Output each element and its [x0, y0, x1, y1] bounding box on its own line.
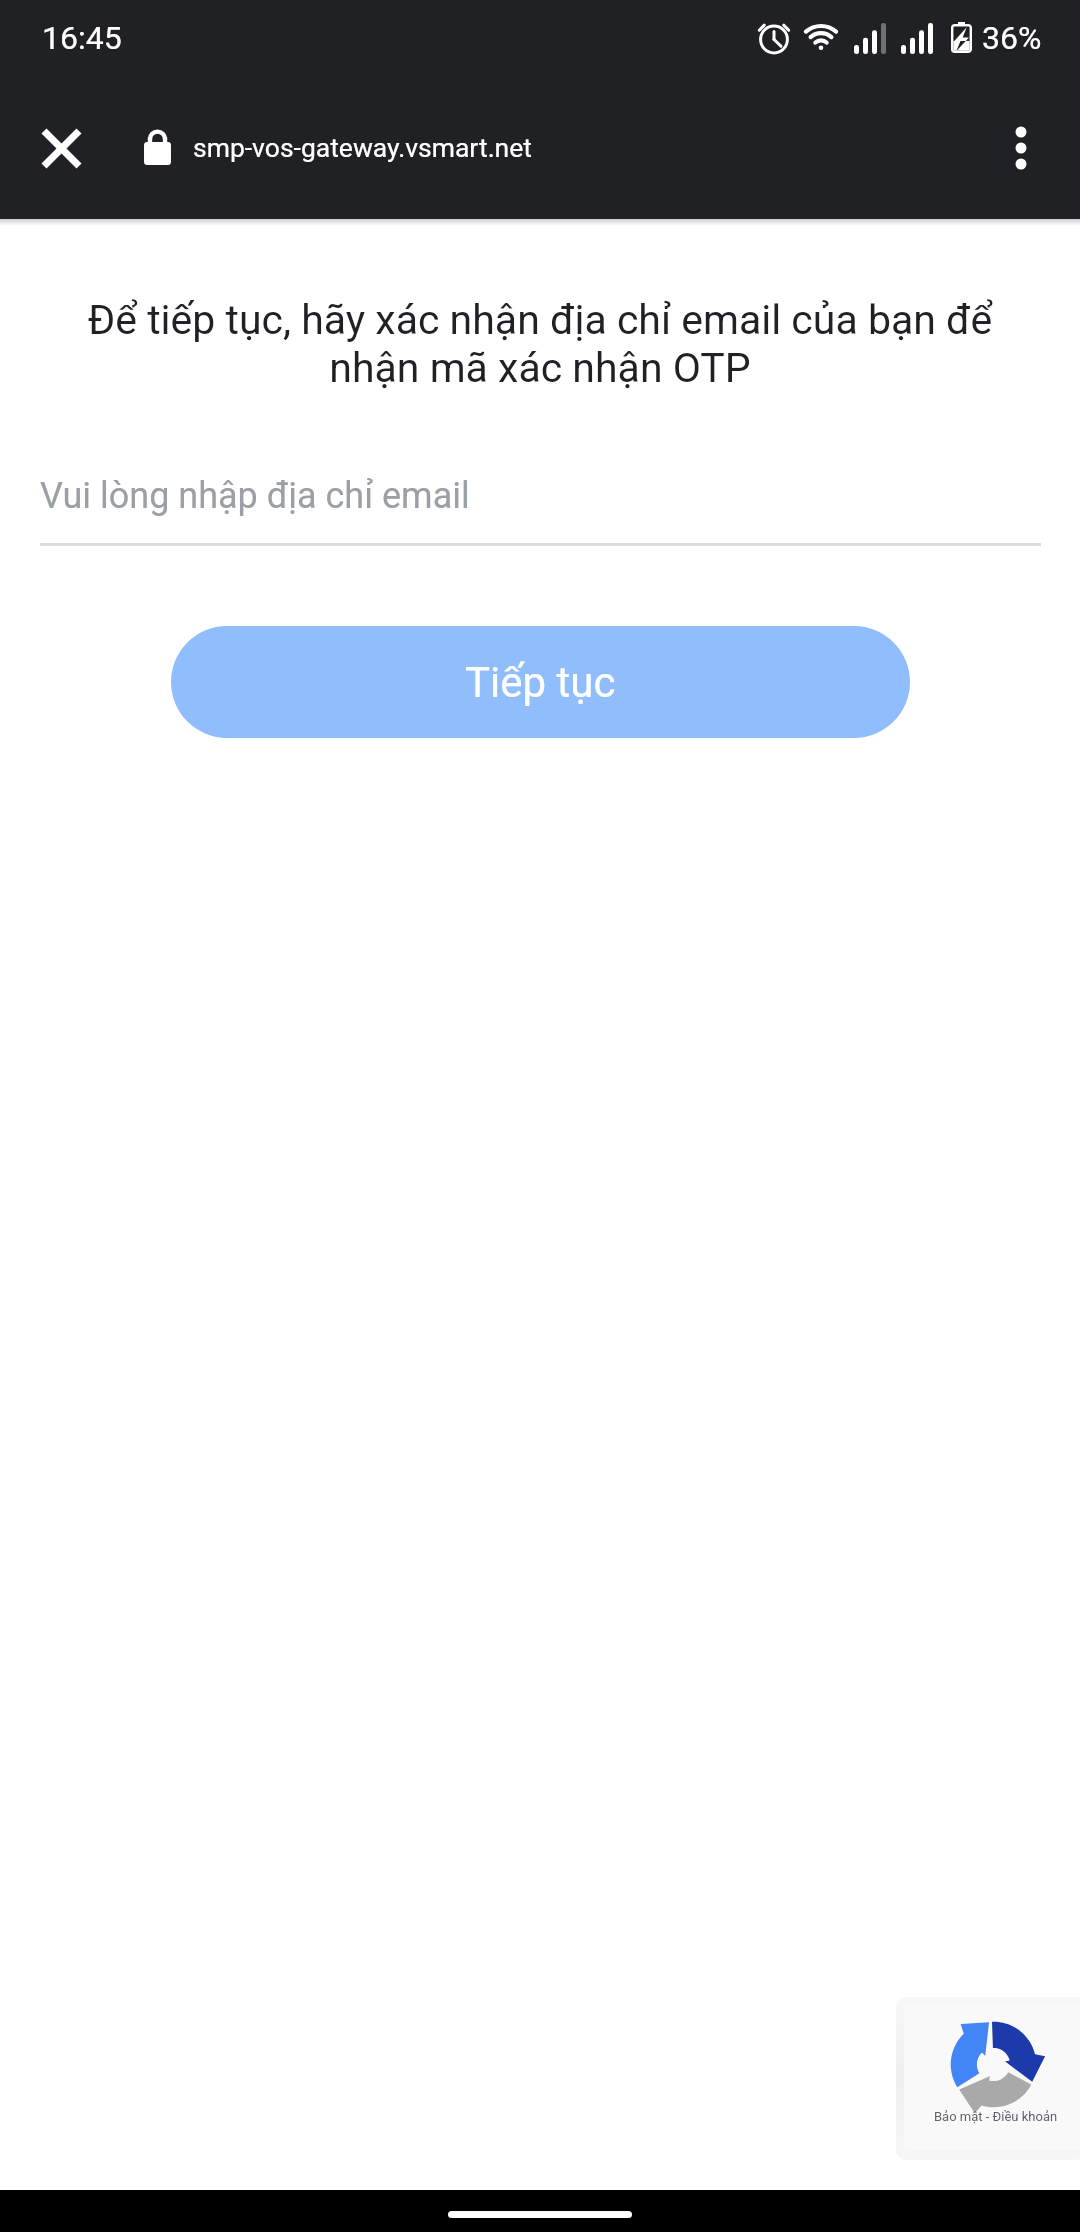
button[interactable]: Close [7, 94, 115, 202]
button[interactable]: reCAPTCHA privacy and terms [904, 2003, 1080, 2150]
staticText: Tiếp tục [465, 658, 616, 707]
button[interactable]: Tiếp tục [171, 626, 910, 738]
button[interactable]: More options [967, 94, 1075, 202]
staticText: 16:45 [42, 19, 122, 57]
staticText: smp-vos-gateway.vsmart.net [193, 132, 532, 163]
staticText: Vui lòng nhập địa chỉ email [40, 475, 470, 517]
staticText: Để tiếp tục, hãy xác nhận địa chỉ email … [42, 296, 1038, 392]
staticText: Bảo mật - Điều khoản [934, 2109, 1058, 2124]
staticText: 36% [982, 19, 1042, 57]
